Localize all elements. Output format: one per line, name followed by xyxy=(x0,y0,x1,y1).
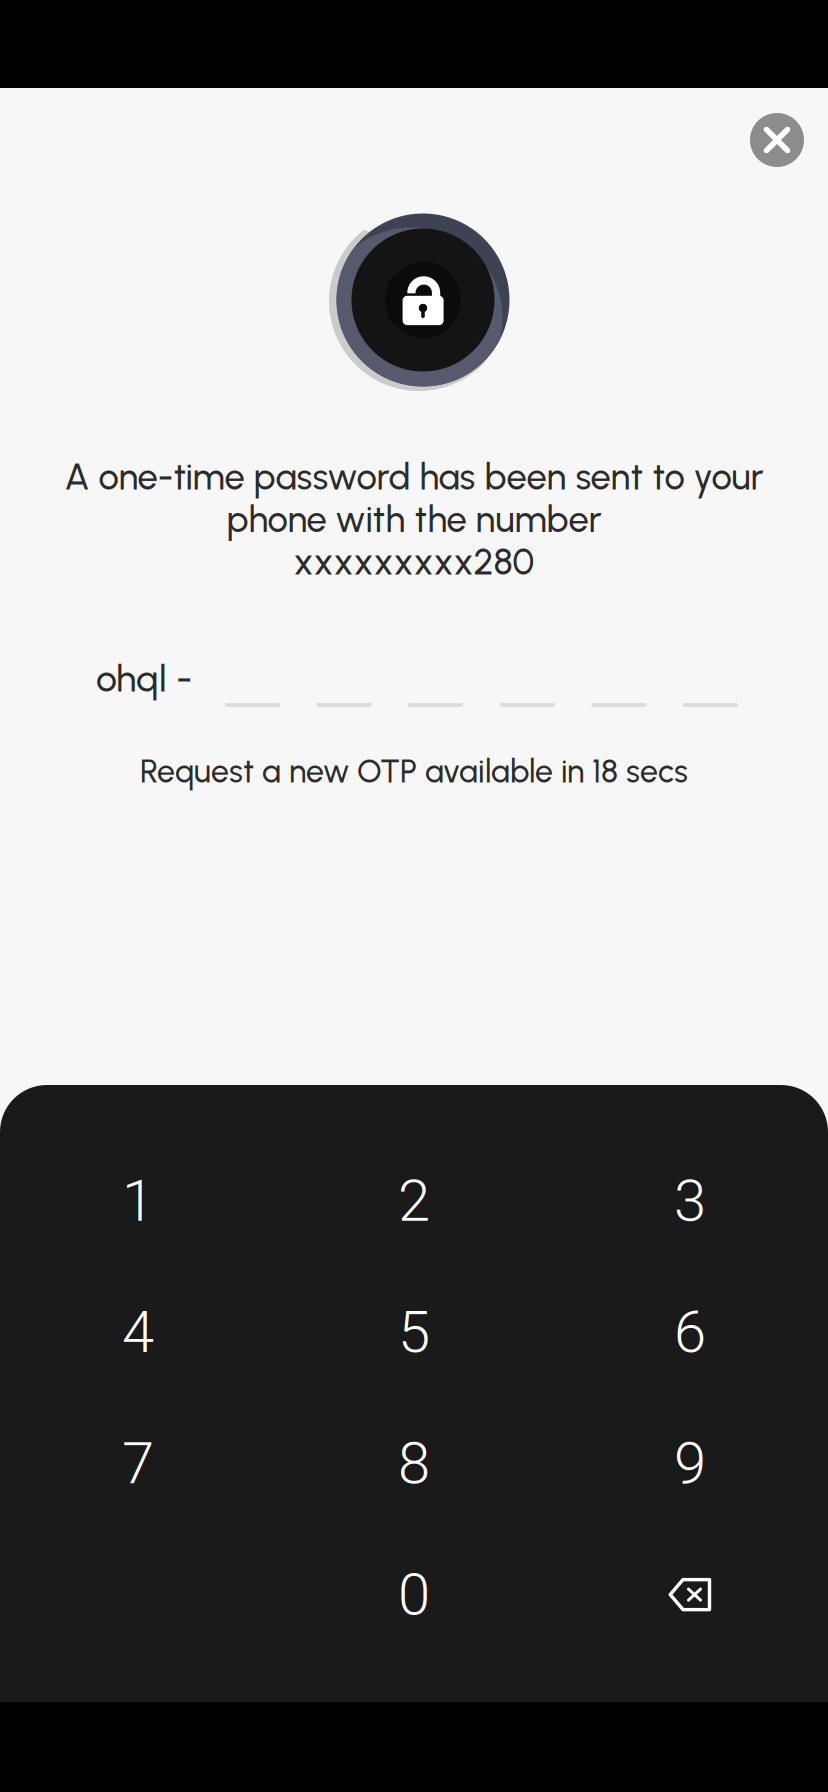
button[interactable]: 2 xyxy=(276,1135,552,1267)
button[interactable]: 8 xyxy=(276,1398,552,1529)
button[interactable]: 4 xyxy=(0,1267,276,1398)
button[interactable]: Delete xyxy=(552,1529,828,1660)
button[interactable]: 6 xyxy=(552,1267,828,1398)
staticText: 9 xyxy=(674,1429,706,1497)
staticText: 7 xyxy=(122,1429,154,1497)
button[interactable]: 9 xyxy=(552,1398,828,1529)
staticText: Request a new OTP available in 18 secs xyxy=(140,752,688,790)
staticText: 0 xyxy=(398,1561,430,1629)
staticText: 4 xyxy=(122,1298,154,1366)
staticText: 8 xyxy=(398,1429,430,1497)
staticText: ohql - xyxy=(96,656,192,701)
staticText: 2 xyxy=(398,1167,430,1235)
button[interactable]: 3 xyxy=(552,1135,828,1267)
button[interactable]: 7 xyxy=(0,1398,276,1529)
button[interactable]: 1 xyxy=(0,1135,276,1267)
button[interactable]: 0 xyxy=(276,1529,552,1660)
staticText: xxxxxxxxx280 xyxy=(293,540,534,583)
staticText: 3 xyxy=(674,1167,706,1235)
staticText: A one-time password has been sent to you… xyxy=(64,455,763,498)
staticText: 6 xyxy=(674,1298,706,1366)
staticText: 1 xyxy=(122,1167,154,1235)
staticText: phone with the number xyxy=(226,497,601,541)
button[interactable]: Close xyxy=(739,102,815,178)
staticText: 5 xyxy=(398,1298,430,1366)
button[interactable]: 5 xyxy=(276,1267,552,1398)
